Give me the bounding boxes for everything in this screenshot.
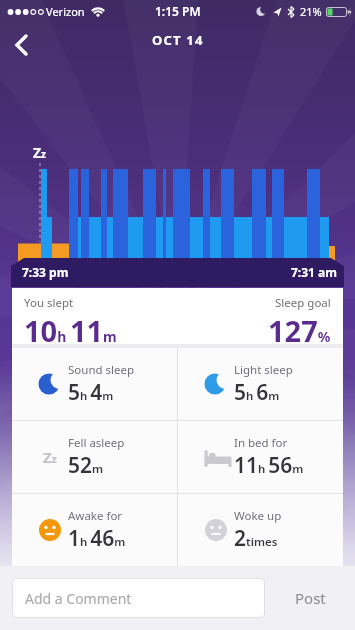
button[interactable]: Sound sleep — [12, 348, 177, 420]
button[interactable]: Light sleep — [178, 348, 343, 420]
staticText: Verizon — [46, 4, 85, 19]
staticText: Zz — [33, 143, 47, 162]
staticText: 7:31 am — [291, 264, 337, 280]
staticText: 7:33 pm — [22, 264, 69, 280]
staticText: Sleep goal — [275, 295, 331, 311]
button[interactable]: Awake for — [12, 494, 177, 566]
staticText: 5h 4m — [68, 378, 114, 407]
staticText: 11h 56m — [234, 451, 304, 480]
staticText: 52m — [68, 451, 104, 480]
staticText: You slept — [24, 295, 74, 311]
staticText: Fell asleep — [68, 435, 125, 451]
staticText: 1:15 PM — [155, 3, 201, 19]
staticText: Add a Comment — [25, 589, 132, 608]
staticText: Post — [295, 588, 326, 608]
staticText: Awake for — [68, 508, 123, 524]
button[interactable]: Add a Comment — [13, 579, 264, 617]
staticText: OCT 14 — [152, 31, 204, 49]
staticText: 5h 6m — [234, 378, 280, 407]
staticText: Light sleep — [234, 362, 293, 378]
staticText: 10h 11m — [24, 311, 117, 344]
button[interactable]: Woke up — [178, 494, 343, 566]
staticText: 2times — [234, 524, 278, 553]
button[interactable]: In bed for — [178, 421, 343, 493]
staticText: 21% — [300, 4, 322, 19]
button[interactable]: Zz — [12, 421, 177, 493]
staticText: In bed for — [234, 435, 288, 451]
staticText: 1h 46m — [68, 524, 126, 553]
staticText: Sound sleep — [68, 362, 135, 378]
staticText: Zz — [43, 447, 57, 467]
staticText: Woke up — [234, 508, 282, 524]
button[interactable]: Post — [265, 566, 355, 630]
button[interactable] — [0, 22, 40, 58]
staticText: 127% — [268, 311, 331, 344]
